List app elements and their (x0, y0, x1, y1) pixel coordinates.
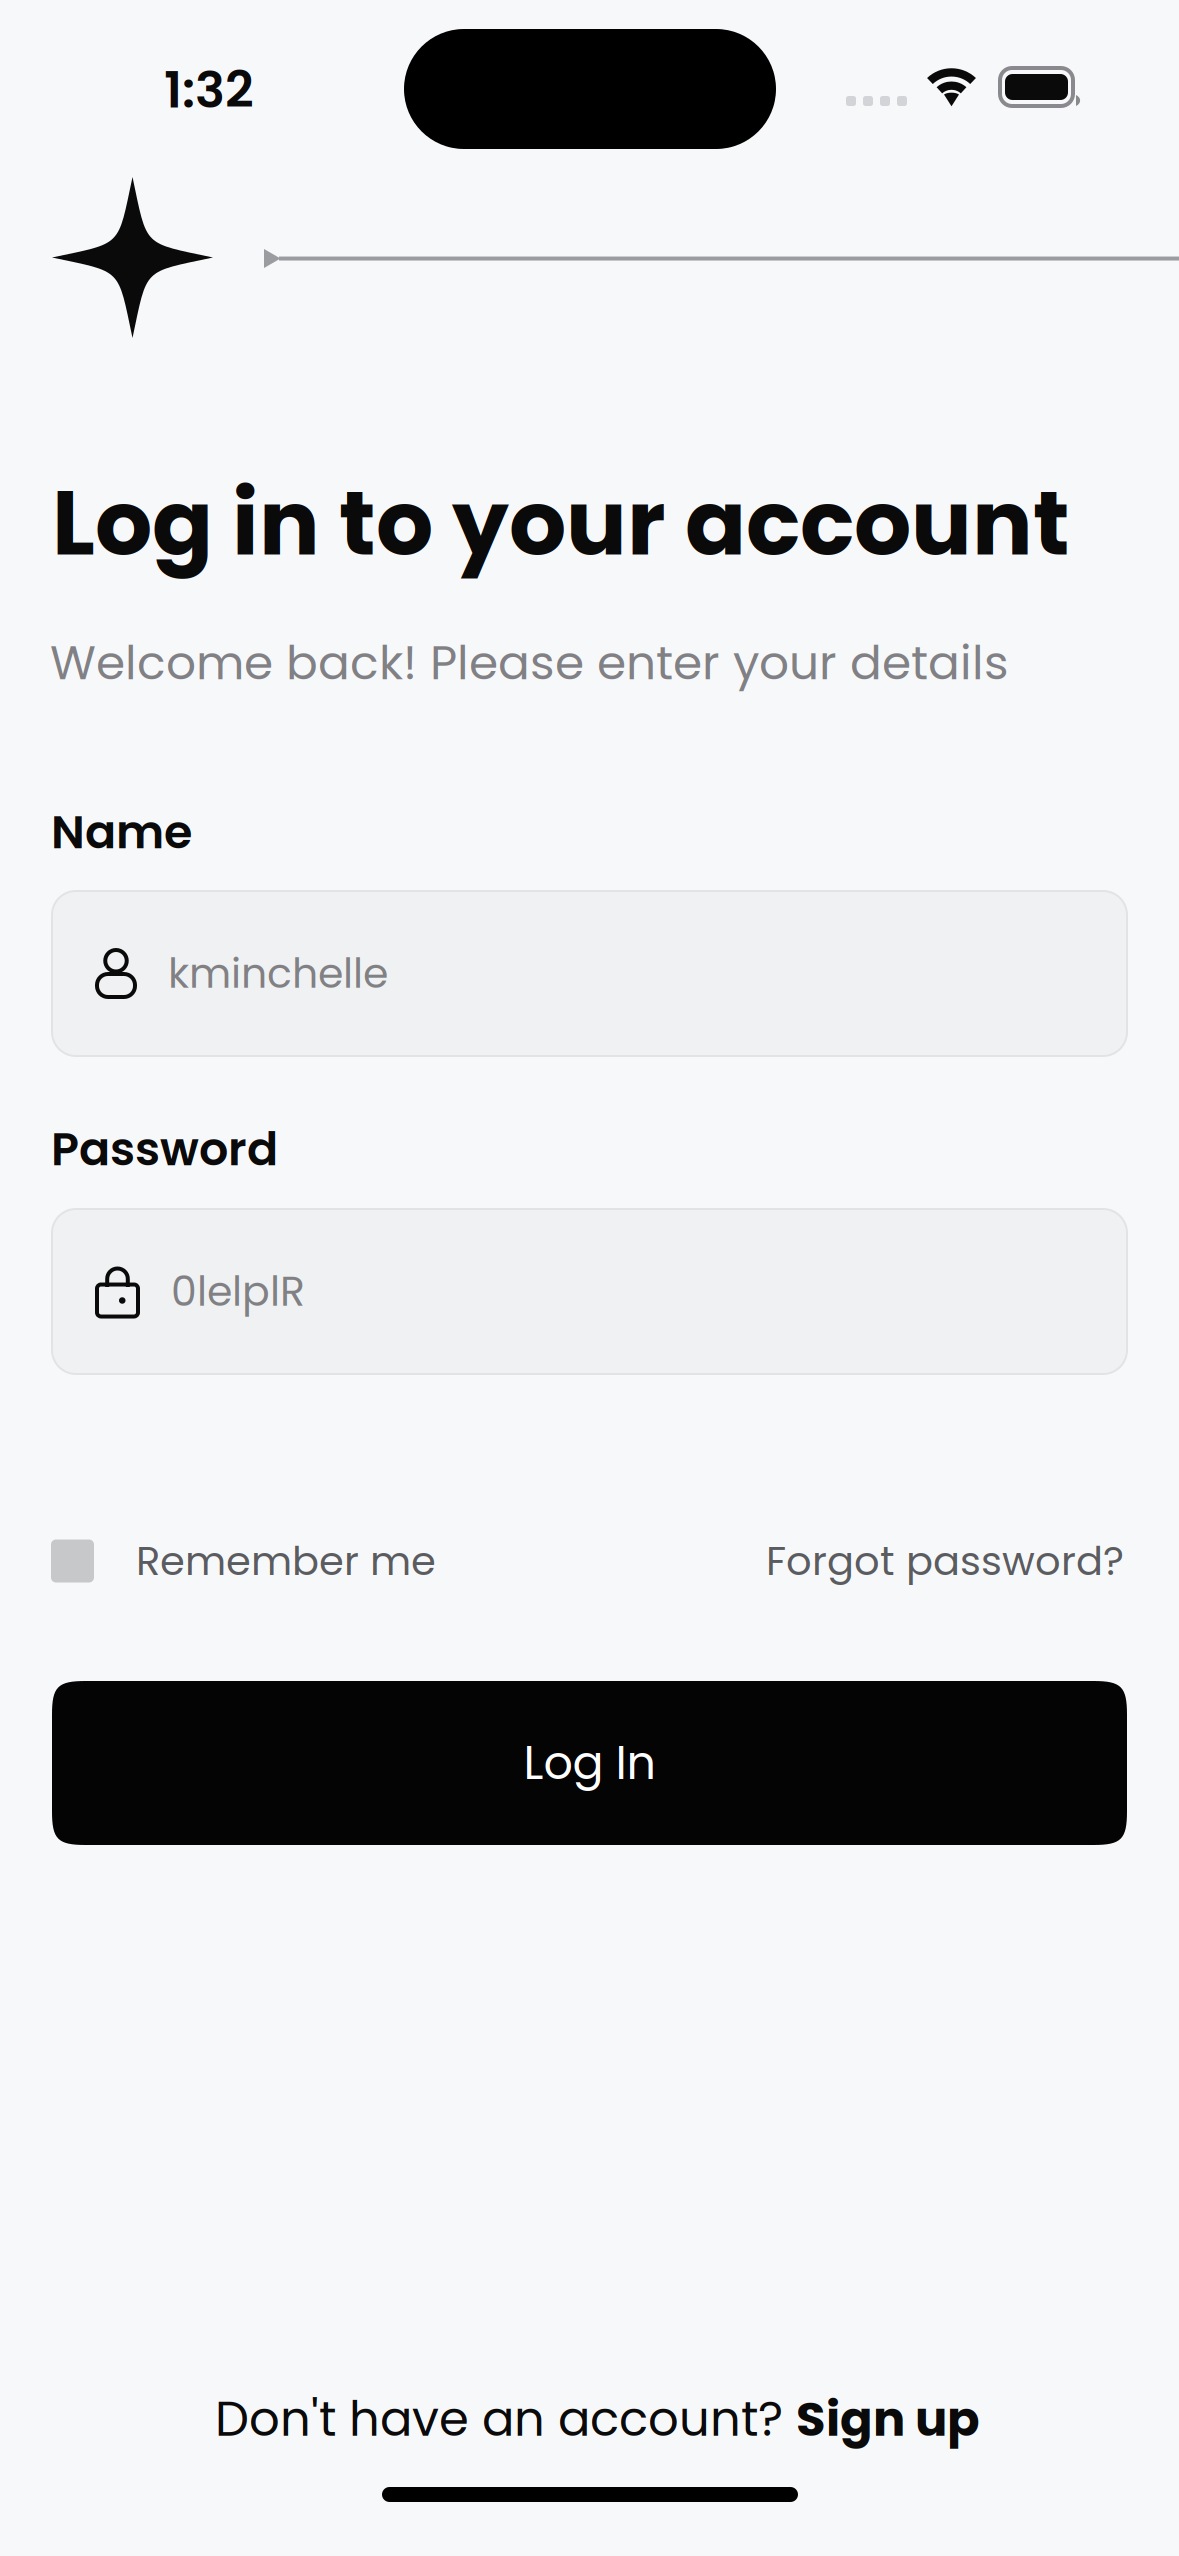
staticText: 0lelplR (171, 1263, 305, 1320)
staticText: Password (51, 1117, 278, 1181)
staticText: Name (51, 800, 192, 864)
staticText: Log In (523, 1731, 655, 1795)
staticText: Sign up (796, 2385, 980, 2453)
button[interactable]: 0lelplR (52, 1209, 1127, 1374)
button[interactable]: Sign up (796, 2385, 980, 2453)
staticText: kminchelle (168, 945, 388, 1002)
button[interactable]: Remember me (51, 1536, 551, 1586)
staticText: Forgot password? (766, 1533, 1124, 1589)
staticText: Welcome back! Please enter your details (50, 630, 1009, 696)
staticText: 1:32 (164, 55, 254, 125)
button[interactable]: kminchelle (52, 891, 1127, 1056)
button[interactable]: Log In (52, 1681, 1127, 1845)
button[interactable]: Forgot password? (766, 1536, 1146, 1586)
staticText: Log in to your account (52, 460, 1070, 586)
staticText: Remember me (136, 1533, 436, 1589)
staticText: Don't have an account? (215, 2385, 796, 2453)
